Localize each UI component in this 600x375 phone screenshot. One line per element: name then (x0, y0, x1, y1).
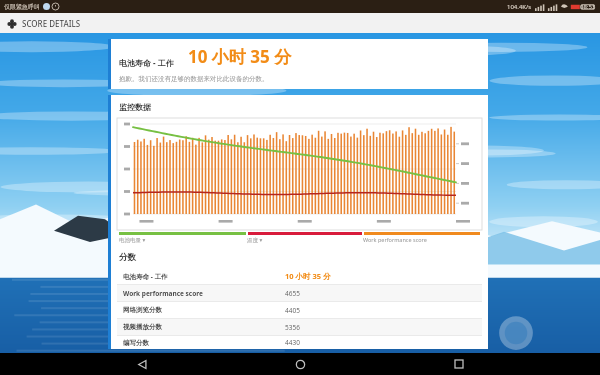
button[interactable]: Work performance score (117, 285, 482, 301)
staticText: 5356 (285, 323, 300, 332)
staticText: 104.4K/s (507, 3, 532, 11)
staticText: 4405 (285, 306, 300, 315)
button[interactable]: 编写分数 (117, 336, 482, 349)
button[interactable]: 电池寿命 - 工作 (108, 39, 488, 89)
button[interactable]: 电池寿命 - 工作 (117, 268, 482, 284)
staticText: 4655 (285, 289, 300, 298)
button[interactable]: PCMark logo (5, 17, 18, 30)
staticText: 网络浏览分数 (123, 306, 162, 314)
staticText: 电池寿命 - 工作 (123, 272, 168, 281)
staticText: SCORE DETAILS (22, 18, 81, 29)
staticText: 08:53 (580, 3, 596, 11)
staticText: 10 小时 35 分 (285, 271, 331, 281)
staticText: 4430 (285, 338, 300, 347)
button[interactable]: 网络浏览分数 (117, 302, 482, 318)
staticText: 电池寿命 - 工作 (119, 57, 174, 68)
staticText: 抱歉。我们还没有足够的数据来对比此设备的分数。 (119, 75, 269, 83)
staticText: 编写分数 (123, 339, 149, 347)
button[interactable]: Recent apps (442, 353, 476, 375)
staticText: 监控数据 (119, 102, 151, 112)
staticText: Work performance score (363, 236, 427, 243)
staticText: 视频播放分数 (123, 323, 162, 331)
staticText: 电池电量 ▾ (119, 236, 146, 244)
button[interactable]: 视频播放分数 (117, 319, 482, 335)
button[interactable]: Back (125, 353, 159, 375)
staticText: 温度 ▾ (247, 236, 263, 244)
staticText: Work performance score (123, 289, 203, 298)
staticText: 10 小时 35 分 (188, 45, 292, 68)
button[interactable]: Home (283, 353, 317, 375)
staticText: 仅限紧急呼叫 (4, 3, 40, 11)
staticText: 分数 (119, 252, 136, 263)
